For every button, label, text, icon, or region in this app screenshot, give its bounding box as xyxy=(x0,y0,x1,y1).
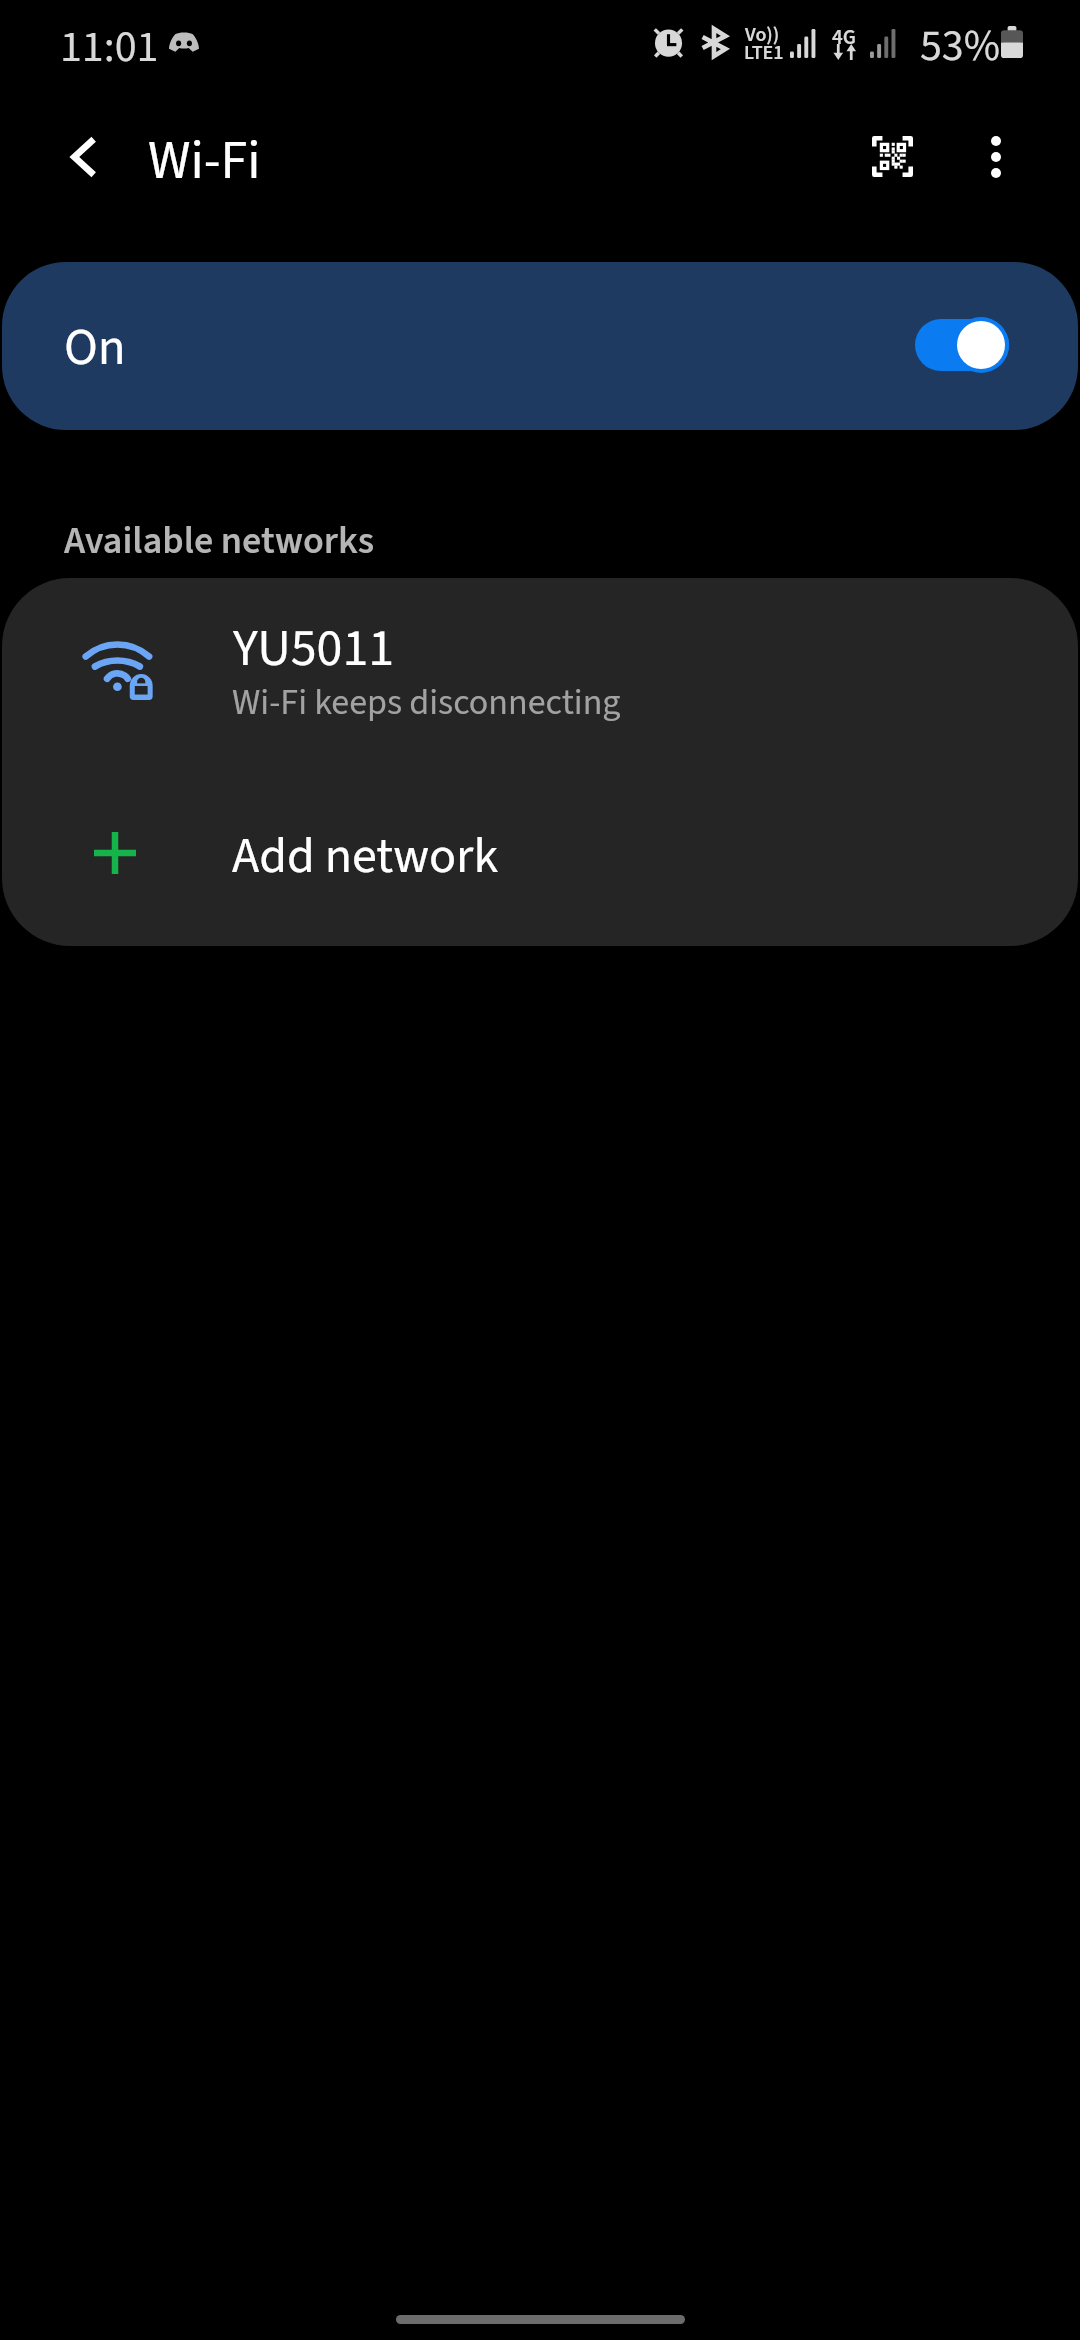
staticText: LTE1 xyxy=(744,39,784,67)
staticText: 11:01 xyxy=(60,16,159,79)
button[interactable]: YU5011 xyxy=(2,578,1078,778)
staticText: Add network xyxy=(232,821,499,892)
staticText: Available networks xyxy=(64,514,375,568)
button[interactable]: On xyxy=(2,262,1078,430)
staticText: YU5011 xyxy=(233,612,395,686)
staticText: Wi-Fi keeps disconnecting xyxy=(232,677,621,728)
staticText: On xyxy=(64,312,126,385)
button[interactable]: Add network xyxy=(2,778,1078,946)
staticText: 53% xyxy=(920,15,1000,78)
staticText: Wi-Fi xyxy=(148,123,261,200)
button[interactable]: More options xyxy=(943,104,1048,209)
staticText: 4G xyxy=(832,22,856,52)
staticText: Vo)) xyxy=(745,21,780,49)
button[interactable]: Navigate up xyxy=(36,109,132,205)
button[interactable]: Scan QR code xyxy=(840,104,945,209)
